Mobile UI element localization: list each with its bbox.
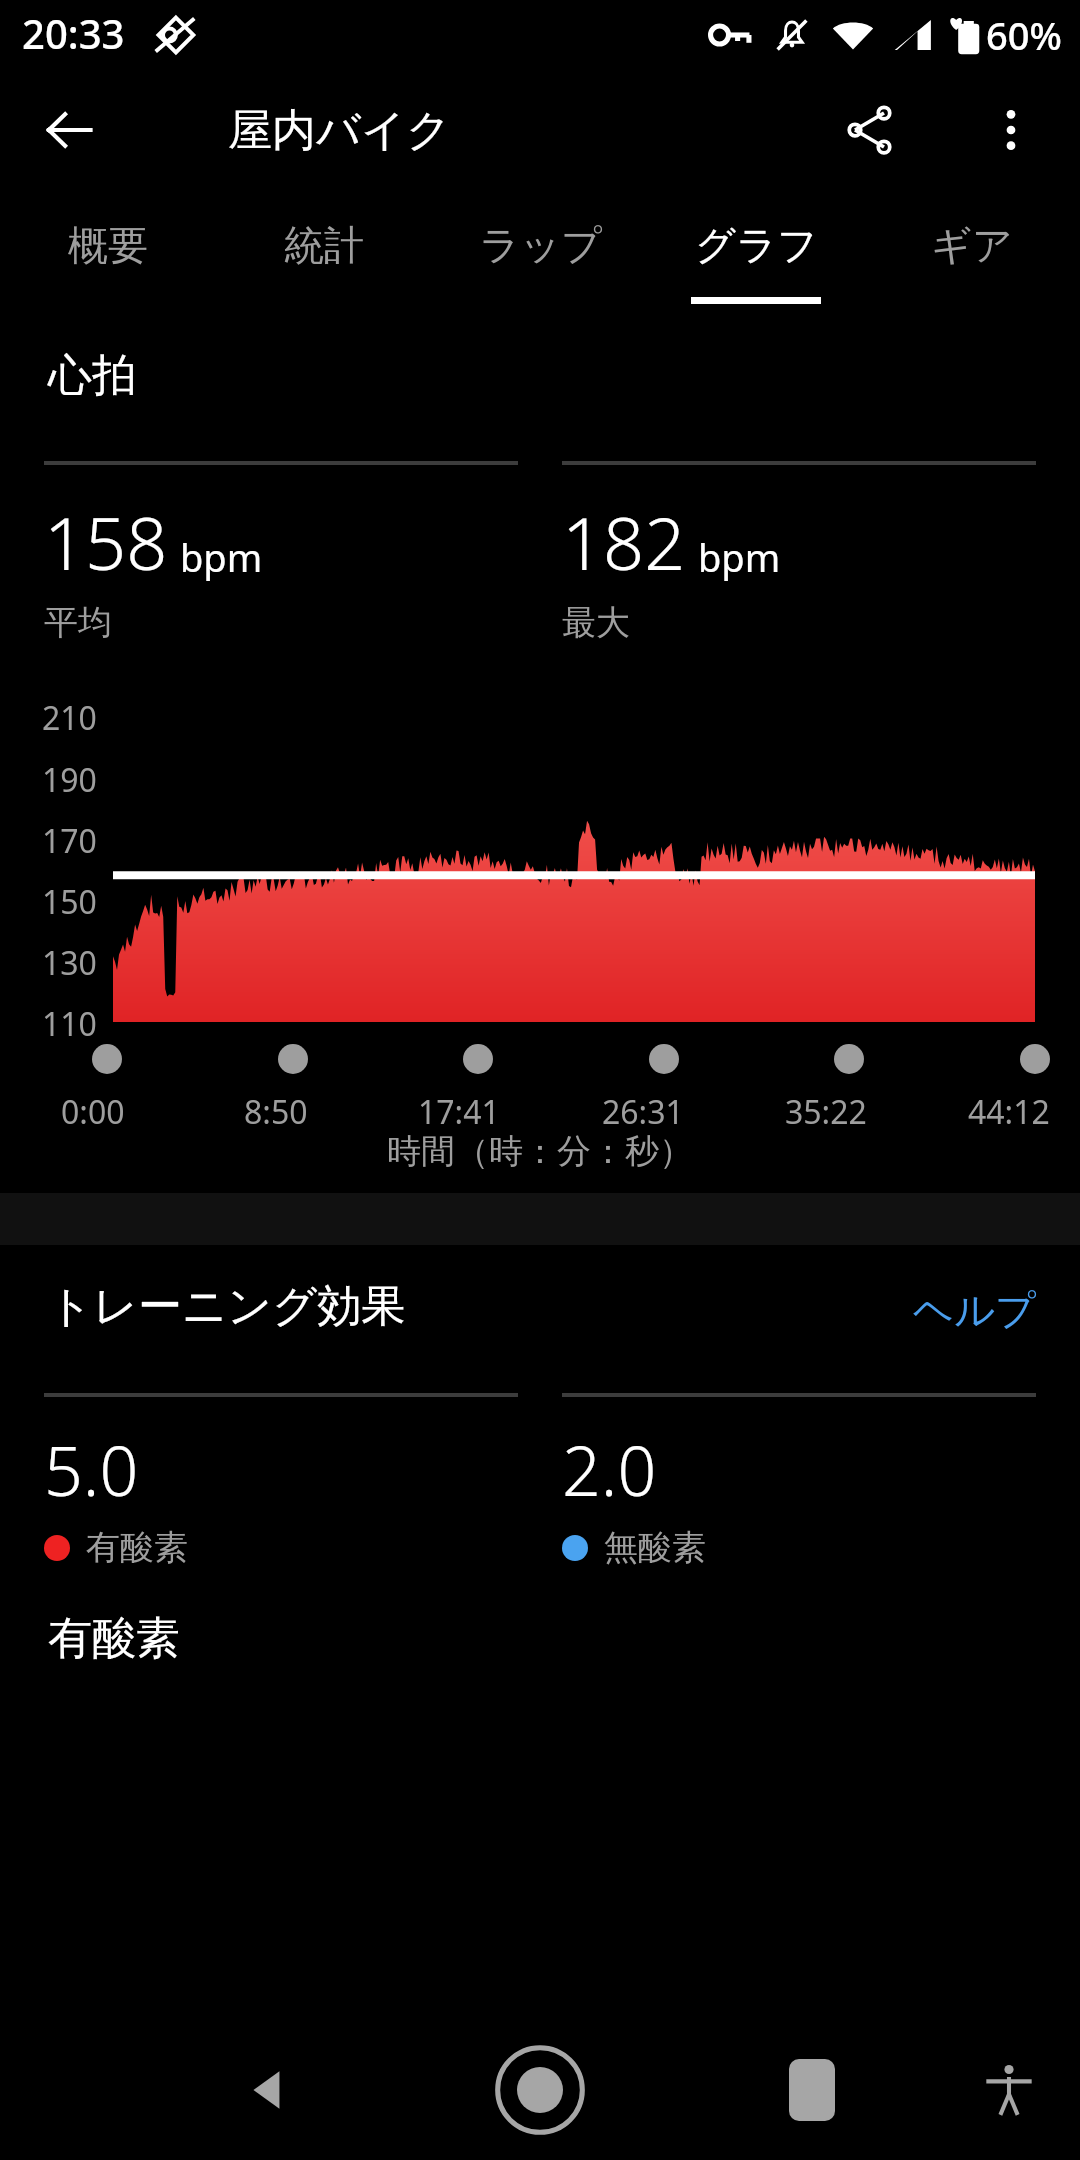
button[interactable]: 概要 bbox=[0, 190, 216, 320]
button[interactable]: ユーザー補助 bbox=[956, 2037, 1062, 2143]
button[interactable]: 戻る bbox=[213, 2035, 323, 2145]
button[interactable]: ホーム bbox=[481, 2031, 599, 2149]
staticText: 5.0 bbox=[44, 1423, 139, 1516]
staticText: 35:22 bbox=[785, 1090, 867, 1134]
staticText: グラフ bbox=[695, 220, 818, 270]
staticText: トレーニング効果 bbox=[48, 1279, 406, 1334]
staticText: 60% bbox=[986, 9, 1062, 61]
staticText: 8:50 bbox=[244, 1090, 308, 1134]
staticText: 130 bbox=[42, 941, 97, 985]
staticText: bpm bbox=[180, 531, 263, 583]
staticText: 26:31 bbox=[602, 1090, 684, 1134]
staticText: 110 bbox=[42, 1002, 97, 1046]
staticText: 20:33 bbox=[22, 6, 125, 60]
staticText: 概要 bbox=[68, 220, 148, 270]
staticText: bpm bbox=[698, 531, 781, 583]
button[interactable]: 共有 bbox=[830, 89, 912, 171]
staticText: ギア bbox=[931, 220, 1013, 270]
staticText: 心拍 bbox=[48, 348, 136, 403]
staticText: 屋内バイク bbox=[228, 103, 452, 158]
button[interactable]: ギア bbox=[864, 190, 1080, 320]
staticText: 時間（時：分：秒） bbox=[0, 1130, 1080, 1173]
staticText: ラップ bbox=[479, 220, 602, 270]
staticText: 170 bbox=[42, 819, 97, 863]
staticText: 2.0 bbox=[562, 1423, 657, 1516]
staticText: 有酸素 bbox=[86, 1526, 188, 1569]
staticText: 0:00 bbox=[61, 1090, 125, 1134]
staticText: 最大 bbox=[562, 601, 630, 644]
staticText: 44:12 bbox=[968, 1090, 1050, 1134]
button[interactable]: ラップ bbox=[432, 190, 648, 320]
staticText: 210 bbox=[42, 696, 97, 740]
button[interactable]: その他のオプション bbox=[970, 89, 1052, 171]
button[interactable]: 統計 bbox=[216, 190, 432, 320]
staticText: ヘルプ bbox=[913, 1285, 1036, 1335]
staticText: 190 bbox=[42, 758, 97, 802]
button[interactable]: ヘルプ bbox=[899, 1279, 1050, 1341]
staticText: 統計 bbox=[284, 220, 364, 270]
staticText: 17:41 bbox=[418, 1090, 500, 1134]
staticText: 150 bbox=[42, 880, 97, 924]
staticText: 平均 bbox=[44, 601, 112, 644]
button[interactable]: 履歴 bbox=[757, 2035, 867, 2145]
staticText: 158 bbox=[44, 493, 168, 591]
button[interactable]: 戻る bbox=[30, 91, 108, 169]
staticText: 有酸素 bbox=[48, 1611, 180, 1666]
staticText: 182 bbox=[562, 493, 686, 591]
staticText: 無酸素 bbox=[604, 1526, 706, 1569]
button[interactable]: グラフ bbox=[648, 190, 864, 320]
